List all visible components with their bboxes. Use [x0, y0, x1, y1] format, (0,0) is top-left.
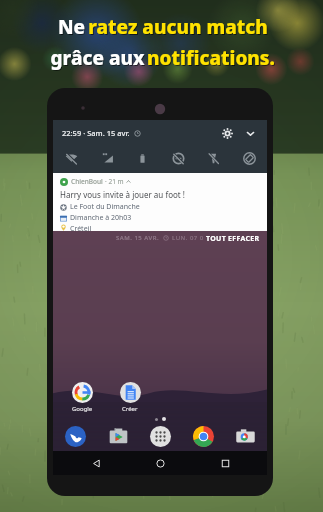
- button[interactable]: Lampe: [203, 148, 223, 168]
- button[interactable]: Applications: [147, 423, 173, 449]
- staticText: Ne: [55, 14, 88, 40]
- button[interactable]: Développer: [242, 125, 258, 141]
- staticText: Harry vous invite à jouer au foot !: [60, 189, 185, 200]
- button[interactable]: Wi-Fi: [61, 148, 81, 168]
- button[interactable]: Téléphone: [62, 423, 88, 449]
- staticText: grâce aux: [48, 45, 147, 71]
- button[interactable]: Appareil photo: [232, 423, 258, 449]
- staticText: LUN. 07 0: [172, 234, 204, 242]
- staticText: notifications.: [148, 46, 276, 72]
- staticText: Dimanche à 20h03: [70, 213, 132, 223]
- button[interactable]: Google: [65, 382, 99, 413]
- staticText: notifications.: [147, 45, 275, 71]
- button[interactable]: Aperçu: [203, 451, 247, 475]
- button[interactable]: Créer: [113, 382, 147, 413]
- button[interactable]: Accueil: [138, 451, 182, 475]
- staticText: · 21 m: [105, 177, 124, 186]
- button[interactable]: Chrome: [190, 423, 216, 449]
- button[interactable]: Batterie: [132, 148, 152, 168]
- staticText: ratez aucun match: [88, 14, 268, 40]
- button[interactable]: Données: [97, 148, 117, 168]
- button[interactable]: ChienBoul: [53, 173, 267, 231]
- button[interactable]: Paramètres: [219, 125, 235, 141]
- button[interactable]: Retour: [74, 451, 118, 475]
- staticText: Ne: [56, 15, 89, 41]
- button[interactable]: TOUT EFFACER: [203, 232, 263, 246]
- button[interactable]: Play Store: [105, 423, 131, 449]
- button[interactable]: Rotation: [239, 148, 259, 168]
- staticText: TOUT EFFACER: [206, 234, 260, 244]
- staticText: SAM. 15 AVR.: [116, 234, 160, 242]
- staticText: Google: [72, 405, 93, 413]
- staticText: Créer: [122, 405, 138, 413]
- staticText: Le Foot du Dimanche: [70, 202, 140, 212]
- staticText: grâce aux: [49, 46, 148, 72]
- staticText: ratez aucun match: [89, 15, 269, 41]
- button[interactable]: Ne pas déranger: [168, 148, 188, 168]
- staticText: 22:59 · Sam. 15 avr.: [62, 128, 130, 138]
- staticText: ChienBoul: [71, 177, 103, 186]
- staticText: Créteil: [70, 224, 92, 231]
